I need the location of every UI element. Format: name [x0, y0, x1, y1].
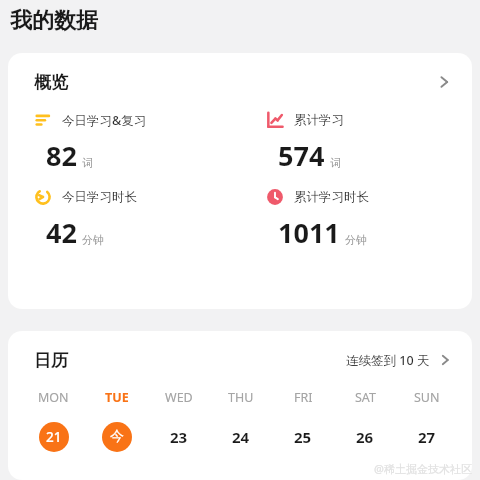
staticText: TUE	[105, 389, 129, 406]
staticText: @稀土掘金技术社区	[374, 461, 472, 476]
staticText: MON	[38, 389, 69, 406]
button[interactable]: 累计学习	[240, 111, 472, 174]
button[interactable]: 26	[350, 422, 380, 452]
staticText: 词	[330, 156, 341, 170]
button[interactable]: 今日学习&复习	[8, 111, 240, 174]
staticText: 574	[278, 137, 325, 174]
staticText: 分钟	[82, 233, 104, 247]
button[interactable]: 概览	[8, 53, 472, 111]
staticText: WED	[165, 389, 193, 406]
other: More	[436, 74, 452, 90]
staticText: 23	[170, 427, 188, 447]
staticText: 21	[46, 428, 62, 446]
staticText: 今日学习&复习	[62, 112, 147, 129]
staticText: 27	[418, 427, 436, 447]
staticText: 日历	[34, 350, 68, 371]
staticText: 累计学习时长	[294, 189, 369, 205]
staticText: 今日学习时长	[62, 189, 137, 205]
staticText: SUN	[414, 389, 440, 406]
staticText: 连续签到 10 天	[346, 352, 430, 369]
button[interactable]: 累计学习时长	[240, 188, 472, 251]
staticText: FRI	[294, 389, 313, 406]
button[interactable]: 24	[226, 422, 256, 452]
button[interactable]: 日历	[8, 331, 472, 389]
button[interactable]: 25	[288, 422, 318, 452]
staticText: 25	[294, 427, 312, 447]
staticText: SAT	[355, 389, 376, 406]
staticText: 我的数据	[10, 7, 98, 35]
staticText: 概览	[34, 72, 68, 93]
staticText: 82	[46, 137, 77, 174]
button[interactable]: 今	[102, 422, 132, 452]
staticText: THU	[228, 389, 254, 406]
staticText: 24	[232, 427, 250, 447]
staticText: 42	[46, 214, 77, 251]
button[interactable]: 27	[412, 422, 442, 452]
staticText: 26	[356, 427, 374, 447]
staticText: 词	[82, 156, 93, 170]
button[interactable]: 23	[164, 422, 194, 452]
staticText: 累计学习	[294, 112, 344, 128]
staticText: 1011	[278, 214, 340, 251]
staticText: 分钟	[345, 233, 367, 247]
other: More	[438, 353, 452, 367]
staticText: 今	[110, 428, 124, 446]
button[interactable]: 今日学习时长	[8, 188, 240, 251]
button[interactable]: 21	[39, 422, 69, 452]
